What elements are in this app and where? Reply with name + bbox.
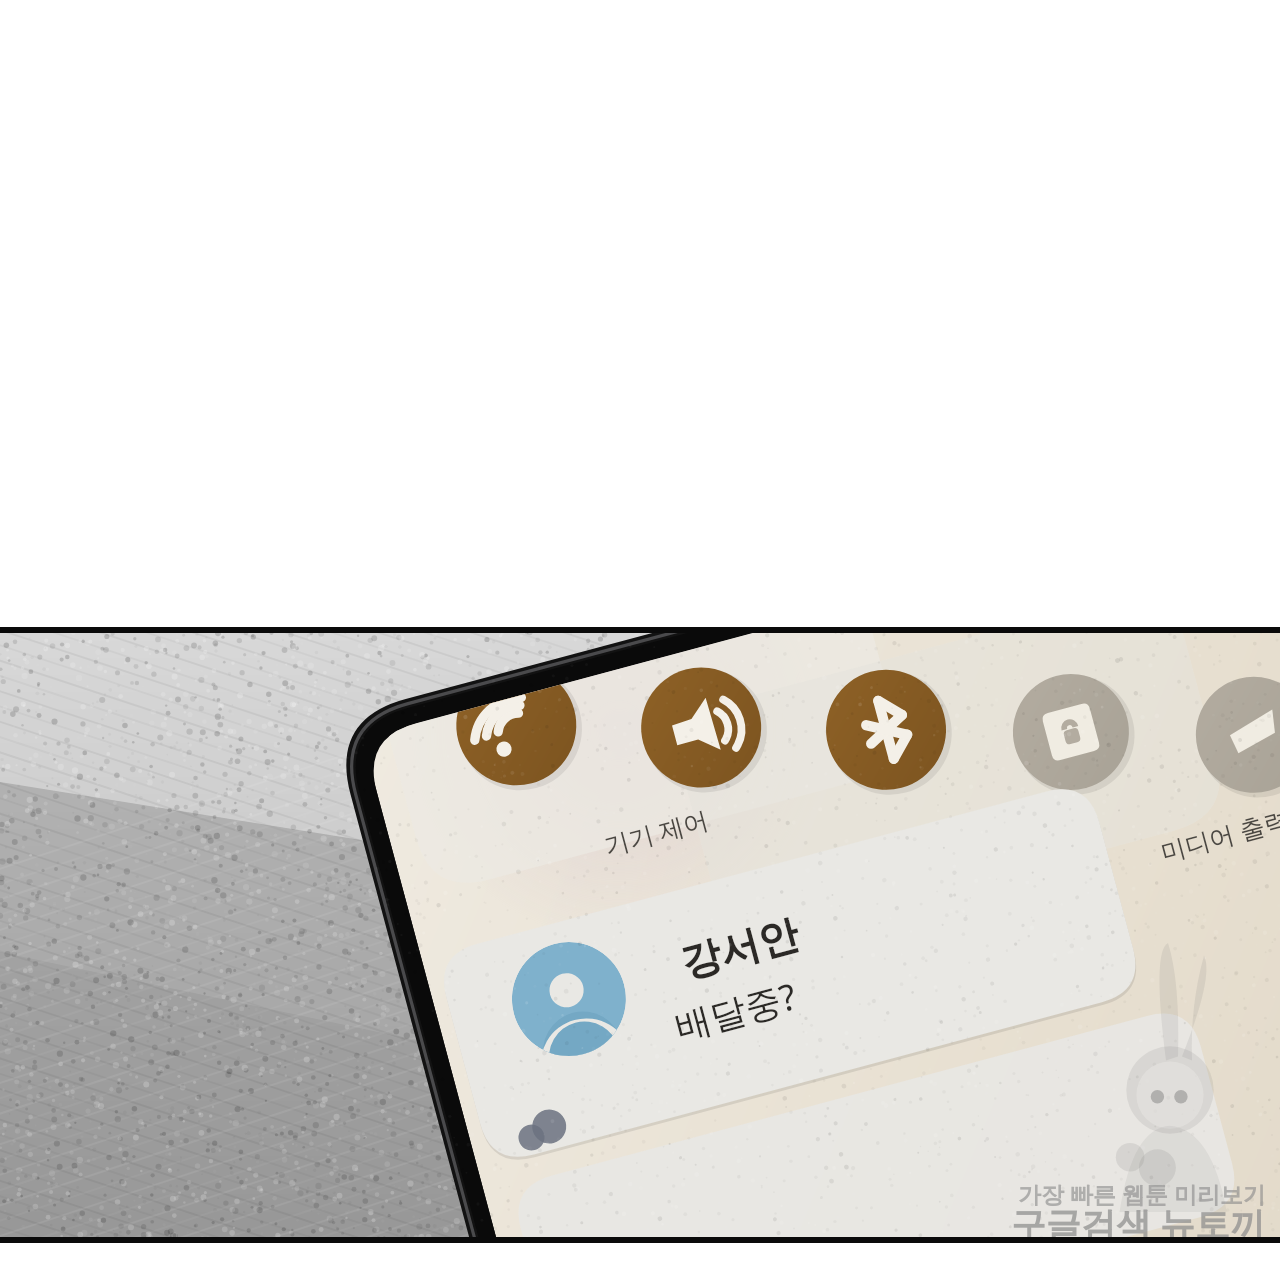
button[interactable]: Photo of phone showing quick settings pa…: [0, 0, 1280, 1280]
